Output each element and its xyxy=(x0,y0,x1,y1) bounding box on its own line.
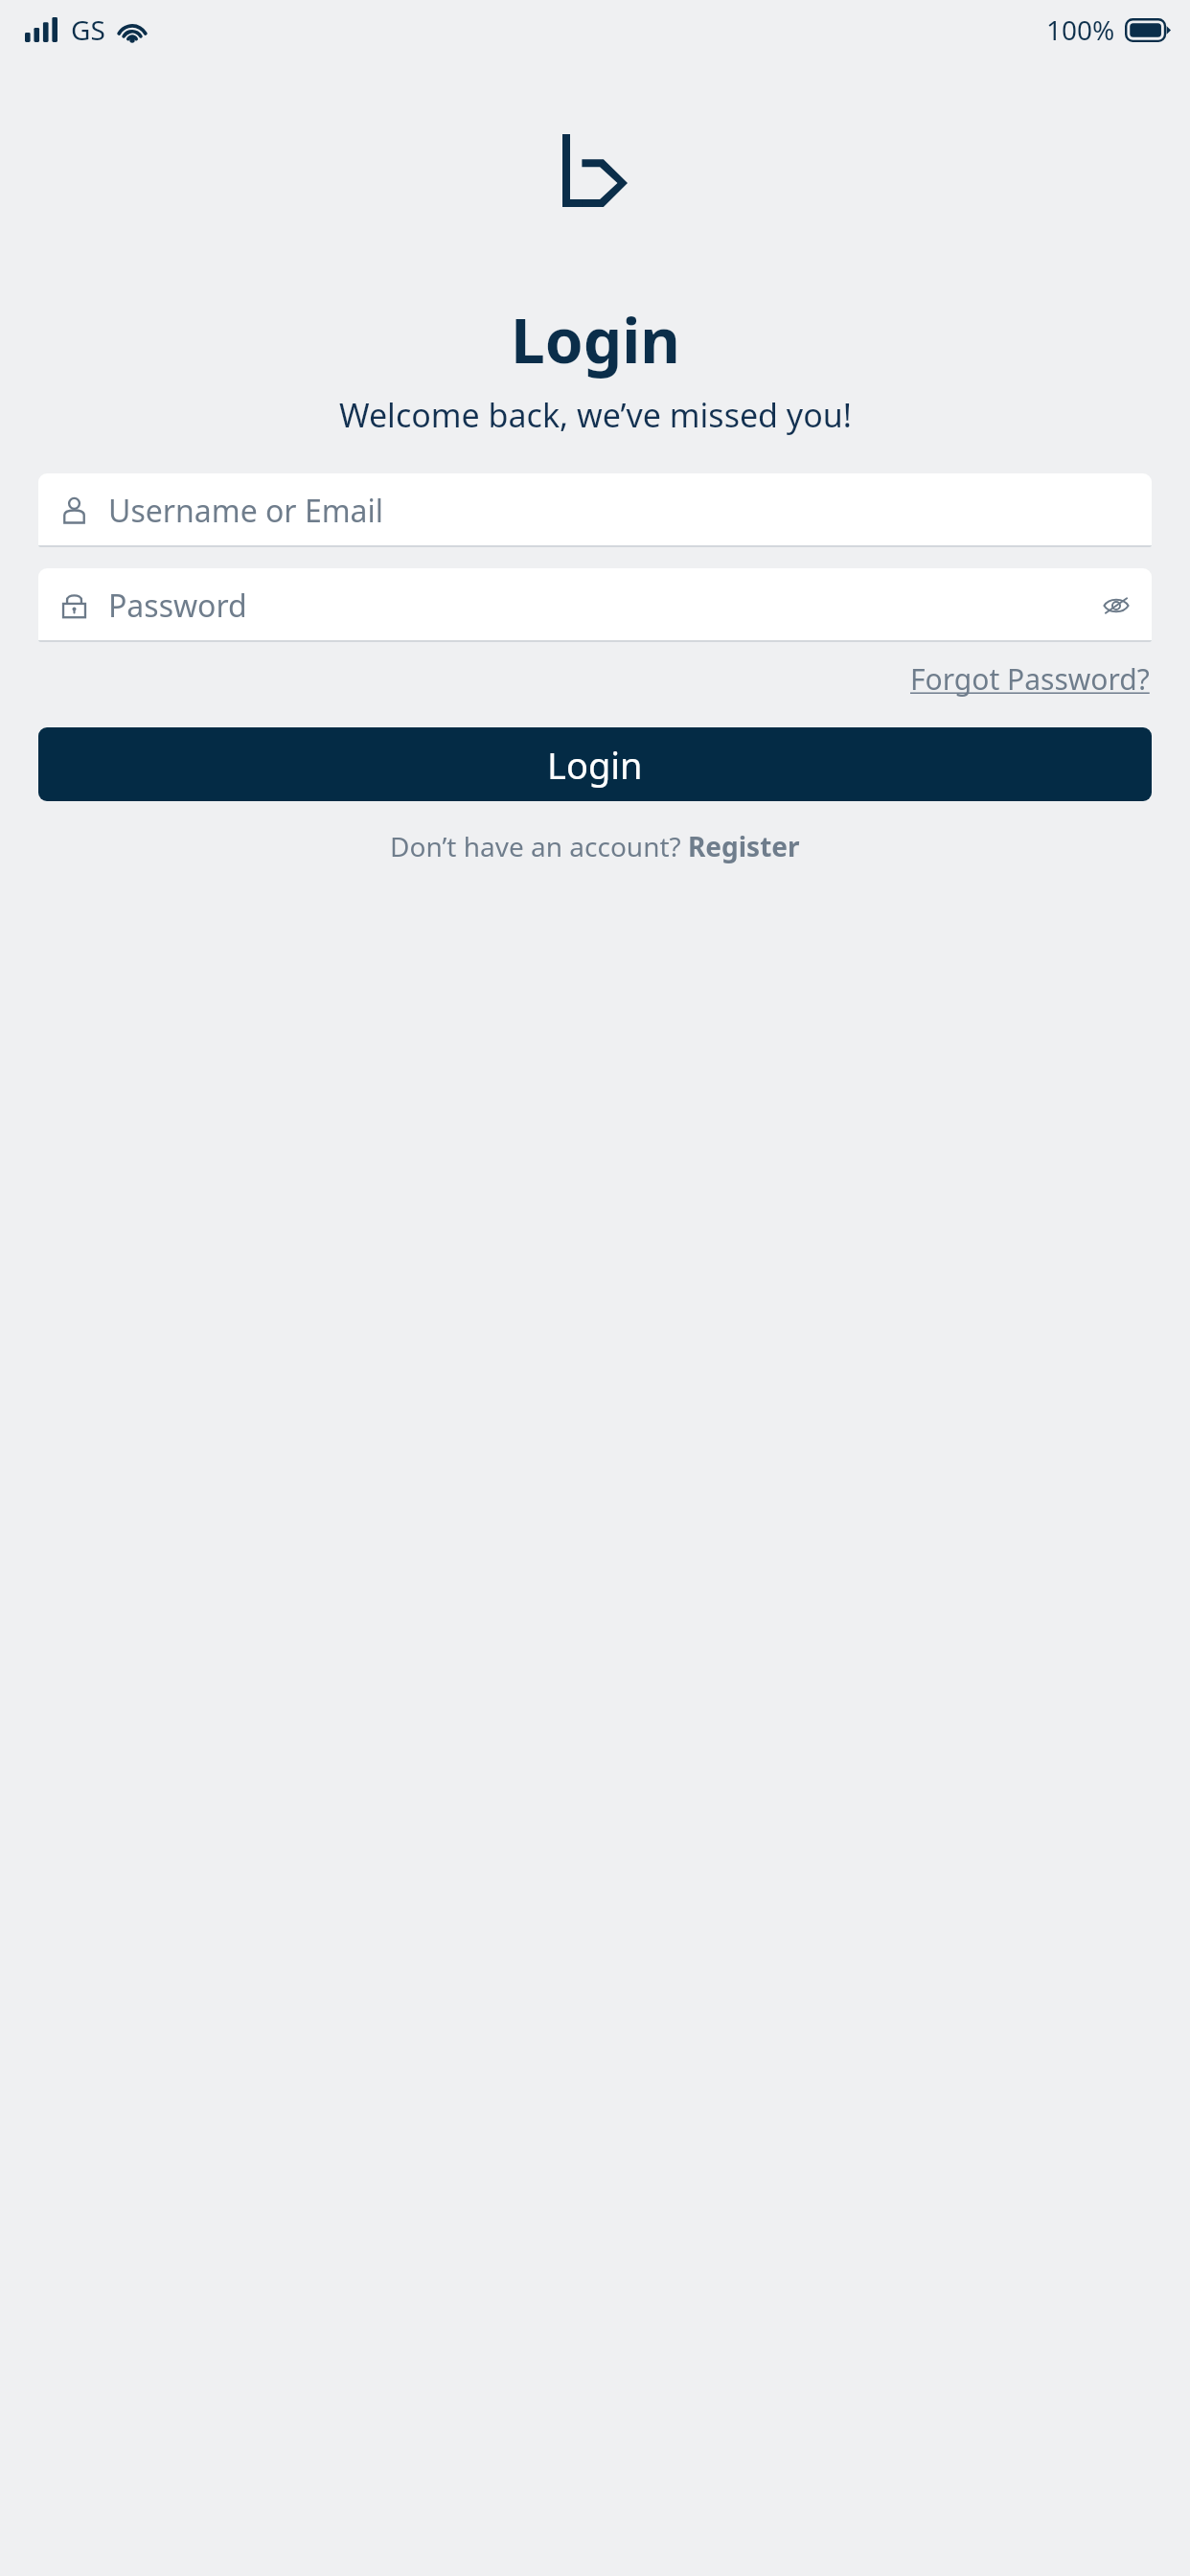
staticText: Welcome back, we’ve missed you! xyxy=(339,393,852,437)
other: Username xyxy=(59,495,89,525)
staticText: 100% xyxy=(1046,11,1115,48)
button[interactable]: Show password xyxy=(1102,591,1131,620)
button[interactable]: Don’t have an account? Register xyxy=(384,822,806,870)
other: Password xyxy=(59,590,89,620)
button[interactable]: Password xyxy=(38,568,1152,642)
staticText: Forgot Password? xyxy=(910,659,1150,699)
button[interactable]: Username xyxy=(38,473,1152,547)
button[interactable]: Login xyxy=(38,727,1152,801)
other: App logo xyxy=(562,134,628,207)
staticText: Username or Email xyxy=(108,490,384,532)
button[interactable]: Forgot Password? xyxy=(908,655,1152,702)
other: Signal strength xyxy=(25,17,57,42)
staticText: Login xyxy=(547,740,643,790)
staticText: GS xyxy=(71,11,105,48)
staticText: Password xyxy=(108,585,247,627)
staticText: Don’t have an account? Register xyxy=(390,828,800,864)
other: Wi-Fi xyxy=(117,18,148,42)
other: Battery 100 percent xyxy=(1125,18,1171,42)
staticText: Login xyxy=(511,298,680,381)
